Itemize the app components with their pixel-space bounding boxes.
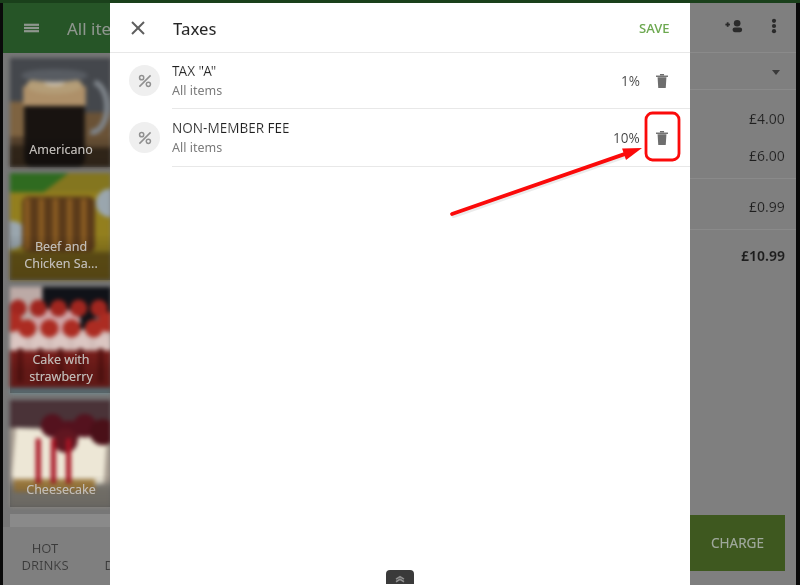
staticText: Cheesecake xyxy=(26,481,96,498)
button[interactable]: Cake with strawberry xyxy=(10,287,111,393)
staticText: NON-MEMBER FEE xyxy=(172,119,290,137)
button[interactable]: NON-MEMBER FEE xyxy=(110,109,690,166)
button[interactable]: Latte xyxy=(118,58,219,167)
button[interactable]: Expand order xyxy=(762,58,790,86)
button[interactable]: Cheesecake xyxy=(10,400,111,507)
staticText: Americano xyxy=(29,141,93,158)
staticText: All items xyxy=(67,17,136,40)
button[interactable]: Add customer xyxy=(713,5,755,47)
button[interactable]: Close xyxy=(110,3,166,52)
staticText: All items xyxy=(172,82,223,99)
staticText: SAVE xyxy=(639,19,670,37)
staticText: Beef and Chicken Sa... xyxy=(24,238,98,271)
staticText: 10% xyxy=(613,129,640,147)
staticText: Cake with strawberry xyxy=(29,351,93,384)
button[interactable]: Americano xyxy=(10,58,111,167)
button[interactable]: CHARGE xyxy=(690,515,785,571)
staticText: COLD DRINKS xyxy=(104,539,152,574)
staticText: Taxes xyxy=(173,17,217,39)
staticText: 1% xyxy=(621,72,640,90)
staticText: £4.00 xyxy=(749,109,785,128)
button[interactable]: Beef and Chicken Sa... xyxy=(10,173,111,280)
staticText: CHARGE xyxy=(711,534,764,552)
button[interactable]: SAVE xyxy=(639,19,670,37)
staticText: £0.99 xyxy=(749,197,785,216)
staticText: Latte xyxy=(154,141,184,158)
button[interactable]: SNACKS xyxy=(335,527,418,585)
staticText: £10.99 xyxy=(741,246,785,265)
button[interactable]: Show navigation bar xyxy=(386,570,414,584)
button[interactable]: HOT DRINKS xyxy=(3,527,86,585)
button[interactable]: Menu xyxy=(3,3,59,53)
staticText: All items xyxy=(172,139,223,156)
staticText: £6.00 xyxy=(749,146,785,165)
staticText: TAX "A" xyxy=(172,62,217,80)
button[interactable]: More options xyxy=(755,7,793,45)
button[interactable]: COLD DRINKS xyxy=(86,527,169,585)
button[interactable]: Delete xyxy=(644,63,680,99)
button[interactable]: Delete xyxy=(644,120,680,156)
button[interactable]: TAX "A" xyxy=(110,53,690,108)
staticText: HOT DRINKS xyxy=(21,539,69,574)
